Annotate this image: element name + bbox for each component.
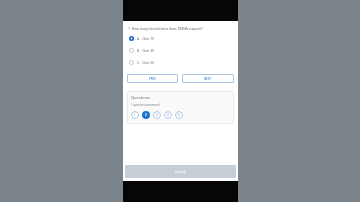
button[interactable]: A. Over 70 [127,35,234,42]
button[interactable]: B. Over 30 [127,47,234,54]
button[interactable]: Submit [125,165,236,178]
staticText: B. Over 30 [137,49,155,53]
button[interactable]: Question 4 [164,111,172,119]
staticText: A. Over 70 [137,37,155,41]
staticText: 2 [145,113,147,117]
staticText: 1 [134,113,136,117]
staticText: Questions [131,95,151,100]
button[interactable]: Question 2 [142,111,150,119]
button[interactable]: Question 5 [175,111,183,119]
button[interactable]: NEXT [182,74,234,83]
button[interactable]: Question 3 [153,111,161,119]
staticText: 4 [167,113,169,117]
staticText: 1 How many blockchains does DMNA support… [128,26,203,31]
staticText: 5 [178,113,180,117]
staticText: Submit [175,170,186,174]
staticText: 3 [156,113,158,117]
button[interactable]: PREV [127,74,178,83]
staticText: C. Over 50 [137,61,155,65]
button[interactable]: Question 1 [131,111,139,119]
staticText: NEXT [204,77,212,81]
staticText: PREV [149,77,156,81]
button[interactable]: C. Over 50 [127,59,234,66]
staticText: 1 question unanswered [131,103,160,107]
